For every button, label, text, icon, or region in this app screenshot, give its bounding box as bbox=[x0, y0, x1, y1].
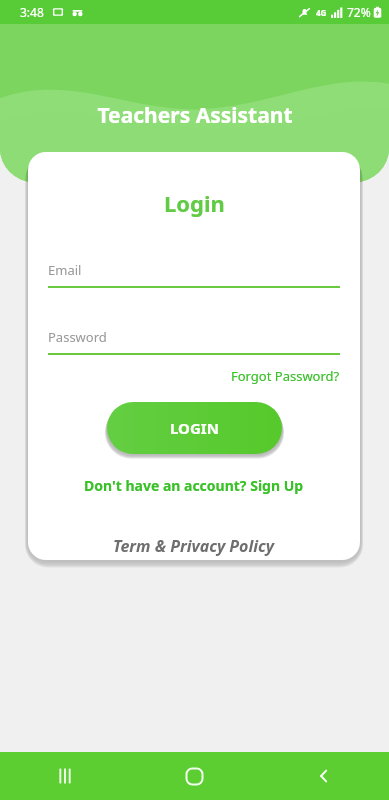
button[interactable]: Forgot Password? bbox=[231, 367, 340, 385]
button[interactable]: Don't have an account? Sign Up bbox=[84, 476, 304, 495]
staticText: Teachers Assistant bbox=[97, 101, 293, 130]
button[interactable]: LOGIN bbox=[107, 402, 282, 454]
staticText: 4G bbox=[316, 7, 327, 18]
button[interactable]: Term & Privacy Policy bbox=[113, 535, 275, 557]
button[interactable]: Email bbox=[48, 261, 340, 288]
button[interactable]: Password bbox=[48, 328, 340, 355]
staticText: Password bbox=[48, 328, 107, 346]
staticText: Don't have an account? Sign Up bbox=[84, 476, 304, 495]
staticText: Forgot Password? bbox=[231, 367, 340, 385]
staticText: 3:48 bbox=[20, 4, 44, 20]
staticText: LOGIN bbox=[170, 418, 219, 438]
button[interactable]: Recents bbox=[0, 752, 129, 800]
button[interactable]: Back bbox=[259, 752, 389, 800]
button[interactable]: Home bbox=[129, 752, 259, 800]
staticText: Term & Privacy Policy bbox=[113, 535, 275, 557]
staticText: Email bbox=[48, 261, 82, 279]
staticText: Login bbox=[164, 188, 225, 218]
staticText: 72% bbox=[347, 4, 371, 20]
